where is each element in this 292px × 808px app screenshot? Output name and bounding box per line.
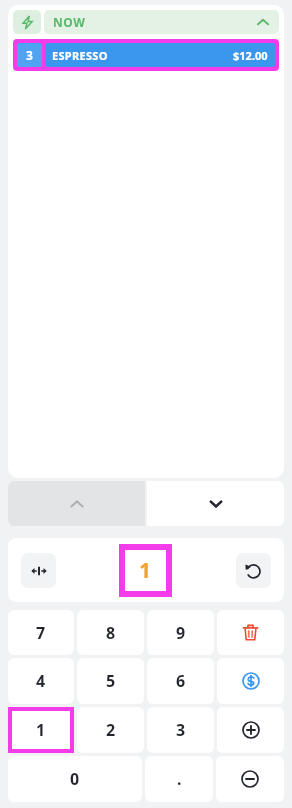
button[interactable]: 5 bbox=[77, 658, 144, 704]
button[interactable]: Increase quantity bbox=[217, 707, 284, 753]
button[interactable]: 4 bbox=[8, 658, 74, 704]
button[interactable]: Scroll up bbox=[8, 481, 145, 526]
staticText: 3 bbox=[26, 47, 33, 63]
button[interactable]: 9 bbox=[147, 610, 214, 655]
button[interactable]: NOW bbox=[44, 10, 279, 34]
staticText: 5 bbox=[106, 670, 116, 692]
button[interactable]: 8 bbox=[77, 610, 144, 655]
button[interactable]: Fire order bbox=[13, 10, 41, 34]
staticText: 2 bbox=[106, 719, 116, 741]
button[interactable]: 3 bbox=[13, 39, 279, 71]
button[interactable]: 7 bbox=[8, 610, 74, 655]
staticText: NOW bbox=[53, 14, 86, 30]
staticText: 9 bbox=[176, 622, 186, 644]
staticText: 3 bbox=[176, 719, 186, 741]
staticText: 4 bbox=[36, 670, 46, 692]
staticText: 7 bbox=[36, 622, 46, 644]
staticText: 6 bbox=[176, 670, 186, 692]
staticText: 8 bbox=[106, 622, 116, 644]
staticText: . bbox=[177, 768, 182, 790]
button[interactable]: 2 bbox=[77, 707, 144, 753]
button[interactable]: Delete bbox=[217, 610, 284, 655]
button[interactable]: Undo bbox=[236, 553, 271, 588]
button[interactable]: 1 bbox=[8, 707, 74, 753]
button[interactable]: . bbox=[145, 756, 213, 802]
staticText: $12.00 bbox=[233, 48, 268, 63]
button[interactable]: 3 bbox=[147, 707, 214, 753]
button[interactable]: Price bbox=[217, 658, 284, 704]
button[interactable]: 0 bbox=[8, 756, 142, 802]
staticText: ESPRESSO bbox=[52, 48, 108, 63]
staticText: 0 bbox=[70, 768, 80, 790]
staticText: 1 bbox=[36, 719, 46, 741]
button[interactable]: 6 bbox=[147, 658, 214, 704]
button[interactable]: Decrease quantity bbox=[216, 756, 284, 802]
button[interactable]: Split bill bbox=[21, 553, 56, 588]
button[interactable]: 1 bbox=[119, 544, 172, 597]
button[interactable]: Scroll down bbox=[147, 481, 284, 526]
staticText: 1 bbox=[139, 556, 152, 585]
